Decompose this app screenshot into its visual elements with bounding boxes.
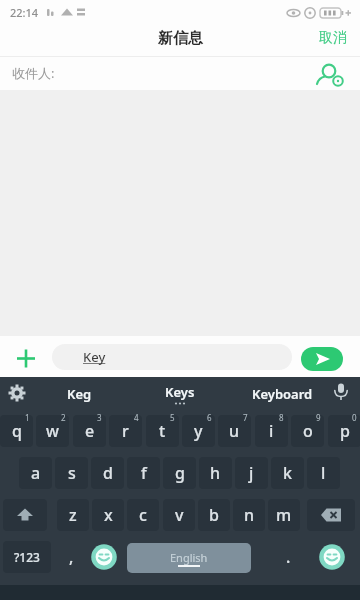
button[interactable]: y bbox=[182, 410, 215, 452]
staticText: y bbox=[194, 420, 203, 442]
staticText: j bbox=[249, 462, 254, 484]
staticText: 0 bbox=[352, 412, 357, 423]
staticText: o bbox=[303, 420, 313, 442]
staticText: 1 bbox=[25, 412, 30, 423]
staticText: f bbox=[141, 462, 147, 484]
button[interactable]: English bbox=[127, 543, 251, 573]
button[interactable]: x bbox=[92, 494, 124, 536]
staticText: 收件人: bbox=[12, 64, 55, 82]
button[interactable]: g bbox=[163, 452, 196, 494]
button[interactable]: Key bbox=[52, 344, 292, 370]
staticText: a bbox=[31, 462, 41, 484]
button[interactable] bbox=[331, 382, 351, 402]
button[interactable]: o bbox=[291, 410, 324, 452]
button[interactable]: s bbox=[55, 452, 88, 494]
staticText: 取消 bbox=[319, 29, 347, 47]
button[interactable]: . bbox=[273, 536, 303, 578]
staticText: b bbox=[209, 504, 219, 526]
staticText: p bbox=[340, 420, 350, 442]
button[interactable] bbox=[14, 347, 38, 371]
button[interactable]: 收件人: bbox=[0, 56, 360, 90]
staticText: 7 bbox=[243, 412, 248, 423]
button[interactable] bbox=[301, 347, 343, 371]
staticText: c bbox=[139, 504, 147, 526]
button[interactable]: m bbox=[268, 494, 300, 536]
staticText: Keys bbox=[165, 383, 195, 401]
staticText: Keg bbox=[67, 385, 92, 403]
staticText: 2 bbox=[61, 412, 66, 423]
button[interactable] bbox=[88, 536, 120, 578]
button[interactable]: d bbox=[91, 452, 124, 494]
staticText: English bbox=[170, 550, 208, 565]
staticText: z bbox=[69, 504, 77, 526]
button[interactable]: q bbox=[0, 410, 33, 452]
button[interactable]: l bbox=[307, 452, 340, 494]
button[interactable]: w bbox=[36, 410, 69, 452]
button[interactable] bbox=[307, 494, 355, 536]
button[interactable]: , bbox=[56, 536, 86, 578]
staticText: r bbox=[122, 420, 129, 442]
staticText: 3 bbox=[97, 412, 102, 423]
staticText: m bbox=[276, 504, 292, 526]
button[interactable]: z bbox=[57, 494, 89, 536]
button[interactable] bbox=[316, 536, 348, 578]
button[interactable]: v bbox=[163, 494, 195, 536]
staticText: 6 bbox=[207, 412, 212, 423]
staticText: k bbox=[283, 462, 292, 484]
button[interactable] bbox=[3, 494, 47, 536]
button[interactable]: u bbox=[218, 410, 251, 452]
staticText: 新信息 bbox=[158, 29, 203, 48]
staticText: , bbox=[69, 546, 74, 568]
button[interactable]: b bbox=[198, 494, 230, 536]
button[interactable]: j bbox=[235, 452, 268, 494]
button[interactable]: e bbox=[73, 410, 106, 452]
staticText: x bbox=[104, 504, 113, 526]
button[interactable]: Keys bbox=[135, 377, 225, 410]
staticText: s bbox=[68, 462, 76, 484]
staticText: e bbox=[85, 420, 95, 442]
button[interactable]: n bbox=[233, 494, 265, 536]
staticText: . bbox=[286, 546, 291, 568]
staticText: g bbox=[175, 462, 185, 484]
staticText: t bbox=[159, 420, 166, 442]
staticText: 22:14 bbox=[10, 5, 39, 20]
staticText: i bbox=[269, 420, 274, 442]
staticText: u bbox=[229, 420, 240, 442]
staticText: 4 bbox=[134, 412, 139, 423]
staticText: v bbox=[175, 504, 184, 526]
button[interactable]: Keg bbox=[34, 377, 124, 410]
staticText: l bbox=[321, 462, 326, 484]
button[interactable]: f bbox=[127, 452, 160, 494]
staticText: ?123 bbox=[14, 549, 40, 565]
button[interactable]: t bbox=[146, 410, 179, 452]
button[interactable]: r bbox=[109, 410, 142, 452]
staticText: h bbox=[210, 462, 221, 484]
staticText: 8 bbox=[279, 412, 284, 423]
staticText: Key bbox=[83, 348, 106, 366]
staticText: Keyboard bbox=[252, 385, 313, 403]
button[interactable]: h bbox=[199, 452, 232, 494]
button[interactable]: 取消 bbox=[319, 29, 347, 47]
staticText: d bbox=[103, 462, 113, 484]
staticText: 5 bbox=[170, 412, 175, 423]
button[interactable]: k bbox=[271, 452, 304, 494]
button[interactable]: p bbox=[328, 410, 360, 452]
button[interactable]: ?123 bbox=[3, 536, 51, 578]
button[interactable]: c bbox=[127, 494, 159, 536]
staticText: 9 bbox=[316, 412, 321, 423]
button[interactable] bbox=[6, 382, 28, 404]
button[interactable]: Keyboard bbox=[237, 377, 327, 410]
staticText: q bbox=[12, 420, 22, 442]
button[interactable]: i bbox=[255, 410, 288, 452]
staticText: n bbox=[244, 504, 255, 526]
staticText: w bbox=[46, 420, 59, 442]
button[interactable]: a bbox=[19, 452, 52, 494]
